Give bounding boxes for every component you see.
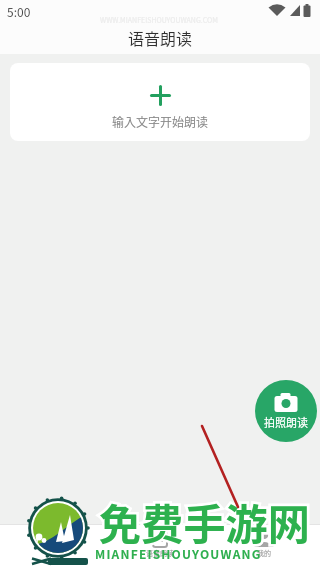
button[interactable]: 拍照朗读	[255, 380, 317, 442]
staticText: 拍照朗读	[264, 414, 308, 430]
staticText: 语音朗读	[128, 26, 193, 49]
staticText: MIANFEISHOUYOUWANG	[95, 545, 262, 562]
button[interactable]: 输入文字开始朗读	[10, 63, 310, 141]
staticText: 免费手游网	[99, 491, 311, 552]
staticText: 语音朗读	[146, 548, 174, 558]
staticText: 我的	[257, 548, 271, 558]
staticText: WWW.MIANFEISHOUYOUWANG.COM	[100, 15, 218, 25]
staticText: 5:00	[7, 3, 31, 20]
staticText: 免费手游网	[99, 491, 311, 552]
staticText: 输入文字开始朗读	[112, 113, 209, 130]
button[interactable]	[106, 524, 213, 569]
button[interactable]	[213, 524, 320, 569]
button[interactable]	[0, 524, 106, 569]
